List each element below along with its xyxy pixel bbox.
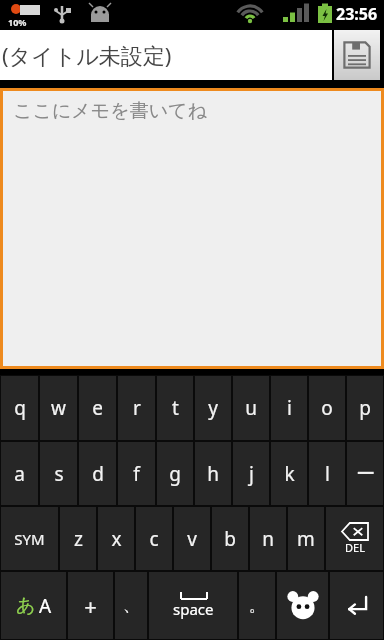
staticText: d	[92, 461, 104, 487]
staticText: g	[169, 461, 181, 487]
button[interactable]: Enter	[330, 572, 383, 639]
staticText: r	[133, 395, 141, 421]
staticText: l	[325, 461, 330, 487]
button[interactable]: i	[271, 376, 307, 440]
button[interactable]: m	[288, 507, 324, 570]
staticText: b	[224, 526, 236, 552]
button[interactable]: space	[149, 572, 237, 639]
button[interactable]: g	[157, 442, 193, 505]
staticText: t	[172, 395, 179, 421]
button[interactable]: j	[233, 442, 269, 505]
staticText: (タイトル未設定)	[2, 40, 172, 70]
staticText: o	[321, 395, 333, 421]
button[interactable]: o	[309, 376, 345, 440]
staticText: ここにメモを書いてね	[13, 99, 208, 123]
button[interactable]: Switch input mode	[1, 572, 66, 639]
staticText: 23:56	[336, 3, 378, 25]
button[interactable]: t	[157, 376, 193, 440]
staticText: v	[187, 526, 197, 552]
staticText: n	[262, 526, 274, 552]
button[interactable]: v	[174, 507, 210, 570]
staticText: 、	[123, 595, 140, 616]
staticText: s	[54, 461, 64, 487]
staticText: x	[111, 526, 122, 552]
staticText: z	[74, 526, 83, 552]
staticText: space	[173, 599, 214, 619]
staticText: m	[297, 526, 315, 552]
button[interactable]: 。	[239, 572, 275, 639]
button[interactable]: p	[347, 376, 383, 440]
button[interactable]: h	[195, 442, 231, 505]
staticText: a	[14, 461, 25, 487]
button[interactable]: ー	[347, 442, 383, 505]
staticText: あ	[16, 594, 36, 618]
button[interactable]: x	[98, 507, 134, 570]
button[interactable]: w	[40, 376, 77, 440]
button[interactable]: c	[136, 507, 172, 570]
staticText: 。	[249, 595, 266, 616]
button[interactable]: s	[40, 442, 77, 505]
staticText: e	[92, 395, 103, 421]
staticText: SYM	[14, 529, 45, 549]
staticText: A	[39, 593, 52, 619]
staticText: q	[14, 395, 26, 421]
staticText: w	[51, 395, 66, 421]
staticText: j	[249, 461, 254, 487]
button[interactable]: k	[271, 442, 307, 505]
button[interactable]: +	[68, 572, 113, 639]
staticText: +	[84, 591, 97, 621]
staticText: 10%	[8, 16, 27, 28]
staticText: f	[133, 461, 140, 487]
button[interactable]: a	[1, 442, 38, 505]
button[interactable]: l	[309, 442, 345, 505]
staticText: k	[284, 461, 295, 487]
button[interactable]: r	[118, 376, 155, 440]
button[interactable]: u	[233, 376, 269, 440]
staticText: i	[287, 395, 292, 421]
button[interactable]: 、	[115, 572, 147, 639]
button[interactable]: n	[250, 507, 286, 570]
staticText: ー	[356, 462, 375, 486]
button[interactable]: Save	[334, 30, 380, 80]
button[interactable]: Emoji	[277, 572, 328, 639]
button[interactable]: b	[212, 507, 248, 570]
staticText: h	[207, 461, 219, 487]
button[interactable]: z	[60, 507, 96, 570]
button[interactable]: y	[195, 376, 231, 440]
staticText: u	[245, 395, 257, 421]
button[interactable]: f	[118, 442, 155, 505]
staticText: c	[149, 526, 159, 552]
button[interactable]: q	[1, 376, 38, 440]
button[interactable]: SYM	[1, 507, 58, 570]
staticText: y	[208, 395, 218, 421]
staticText: p	[359, 395, 371, 421]
button[interactable]: (タイトル未設定)	[0, 30, 332, 80]
button[interactable]: d	[79, 442, 116, 505]
button[interactable]: e	[79, 376, 116, 440]
button[interactable]: ここにメモを書いてね	[3, 91, 381, 366]
staticText: DEL	[345, 540, 365, 555]
button[interactable]: Delete	[326, 507, 383, 570]
